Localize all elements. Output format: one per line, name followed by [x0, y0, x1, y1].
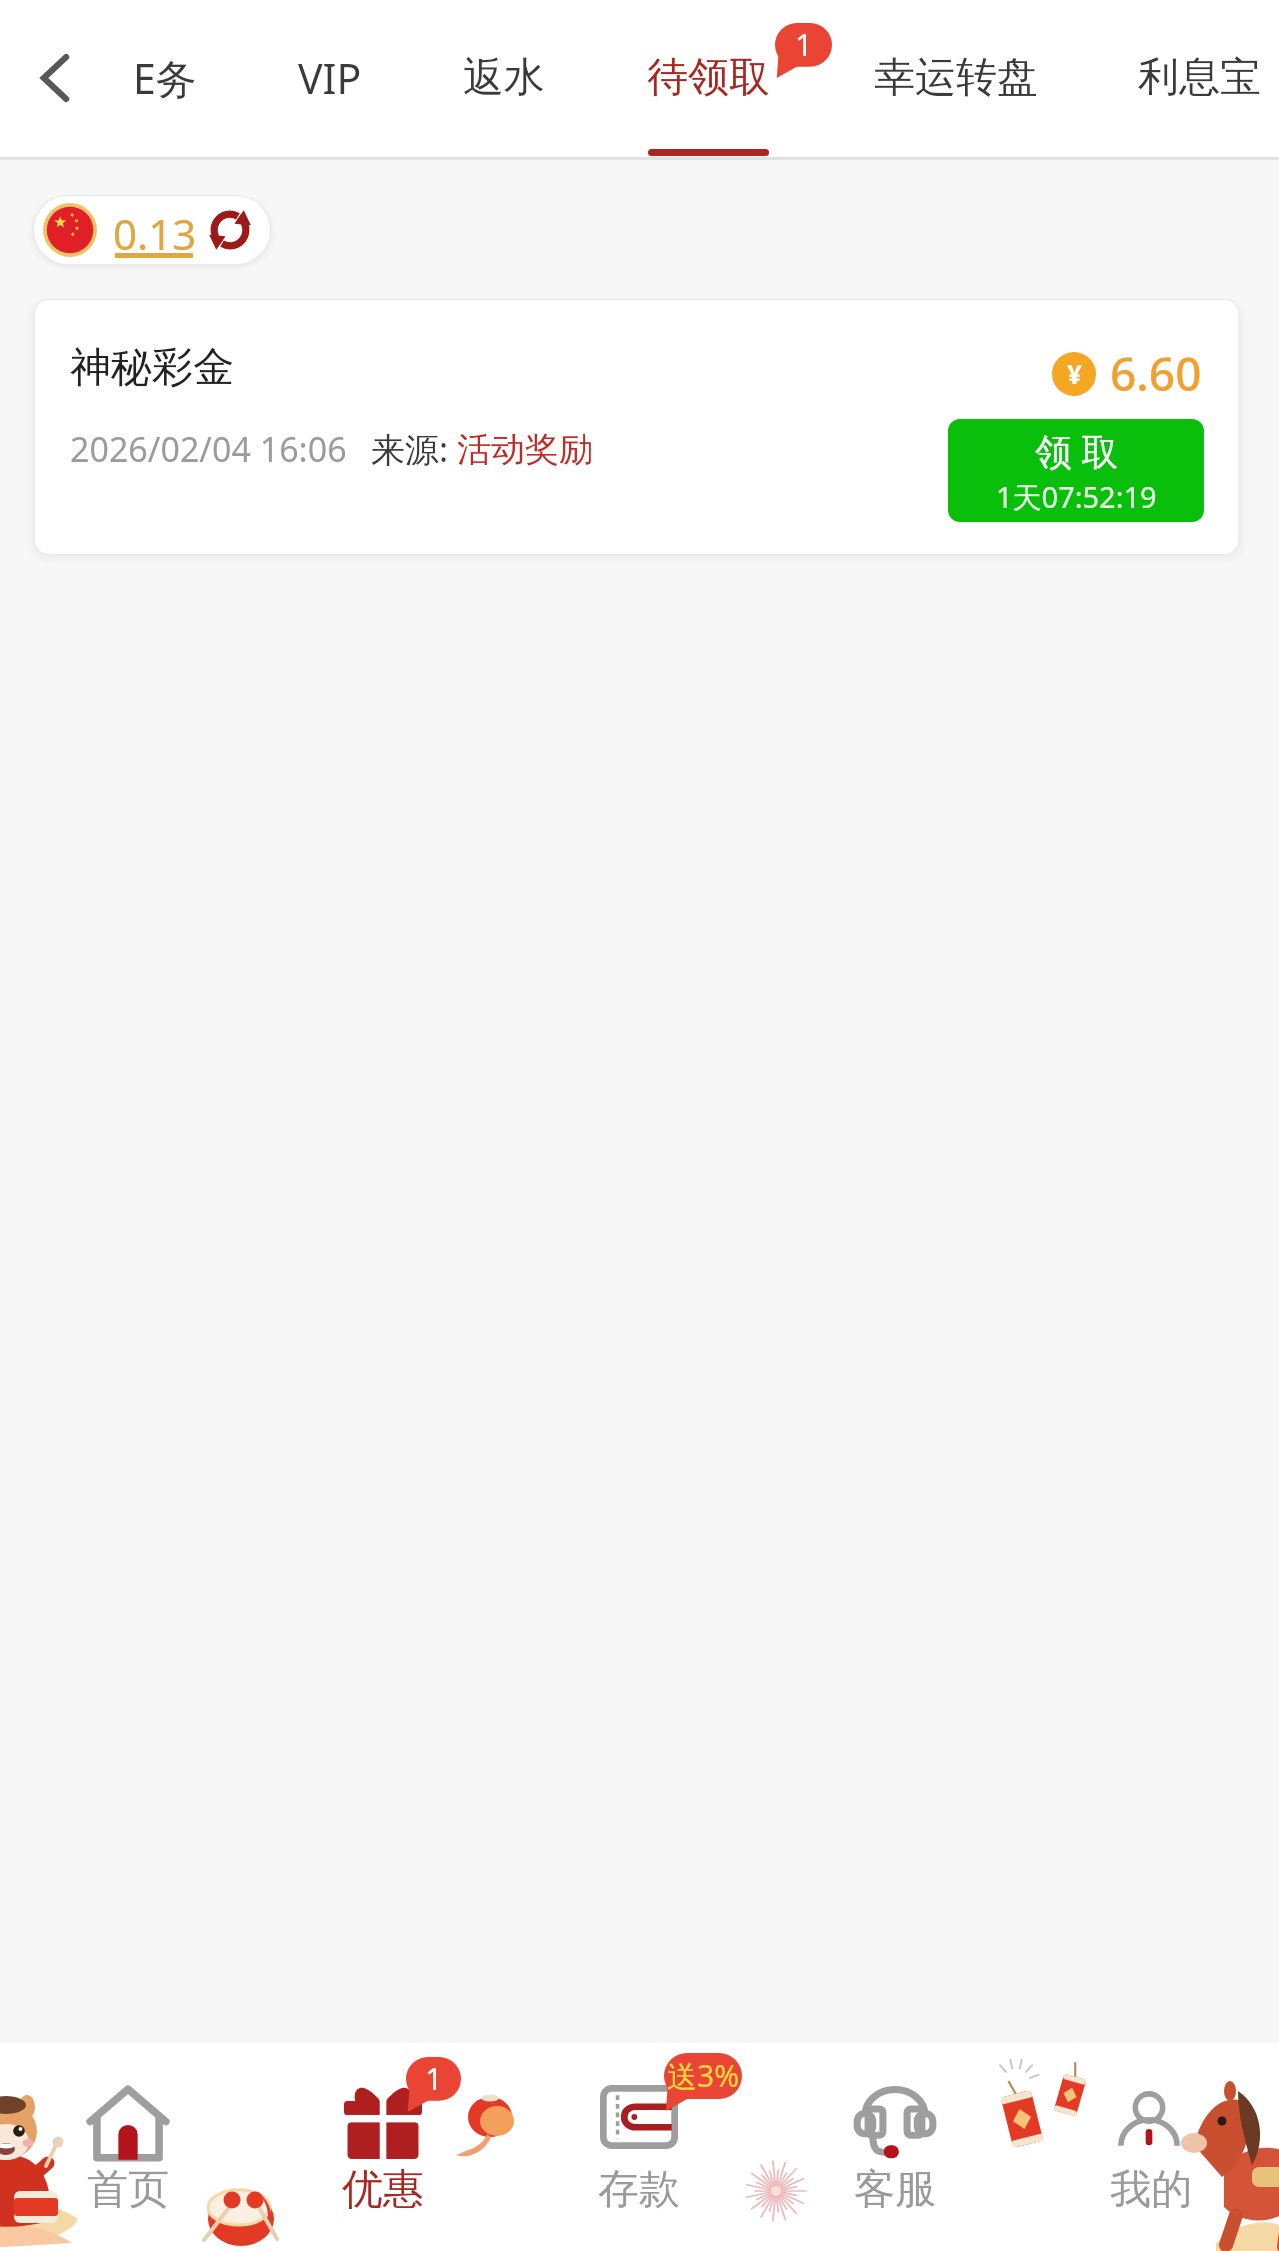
- button[interactable]: VIP: [285, 0, 375, 157]
- staticText: 神秘彩金: [70, 342, 234, 394]
- button[interactable]: 优惠: [255, 2043, 511, 2251]
- staticText: 1: [425, 2057, 443, 2099]
- staticText: 1: [795, 23, 813, 65]
- button[interactable]: 首页: [0, 2043, 255, 2251]
- staticText: 6.60: [1110, 342, 1202, 405]
- button[interactable]: 我的: [1023, 2043, 1279, 2251]
- button[interactable]: 客服: [767, 2043, 1023, 2251]
- staticText: 来源:: [371, 426, 457, 472]
- button[interactable]: Back: [10, 0, 100, 157]
- button[interactable]: Balance 0.13: [34, 196, 270, 264]
- staticText: 幸运转盘: [874, 52, 1038, 104]
- staticText: 活动奖励: [457, 428, 593, 471]
- staticText: VIP: [298, 50, 362, 106]
- staticText: 领 取: [1035, 425, 1119, 476]
- staticText: 1天07:52:19: [996, 477, 1157, 517]
- staticText: 优惠: [342, 2164, 424, 2216]
- staticText: 0.13: [113, 205, 197, 262]
- staticText: 返水: [463, 52, 545, 104]
- button[interactable]: 幸运转盘: [858, 0, 1054, 157]
- staticText: 送3%: [667, 2055, 740, 2096]
- button[interactable]: 利息宝: [1124, 0, 1275, 157]
- staticText: ¥: [1067, 356, 1082, 391]
- staticText: 待领取: [647, 52, 770, 104]
- button[interactable]: 返水: [448, 0, 560, 157]
- button[interactable]: E务: [121, 0, 209, 157]
- staticText: 我的: [1110, 2164, 1192, 2216]
- staticText: 存款: [598, 2164, 680, 2216]
- staticText: E务: [133, 50, 197, 106]
- button[interactable]: 领 取: [948, 419, 1204, 522]
- staticText: 客服: [854, 2164, 936, 2216]
- other: Refresh: [206, 206, 254, 254]
- staticText: 2026/02/04 16:06: [70, 426, 347, 472]
- staticText: 首页: [87, 2164, 169, 2216]
- button[interactable]: 存款: [511, 2043, 767, 2251]
- staticText: 利息宝: [1138, 52, 1261, 104]
- button[interactable]: 神秘彩金: [35, 300, 1238, 554]
- button[interactable]: 待领取: [634, 0, 783, 157]
